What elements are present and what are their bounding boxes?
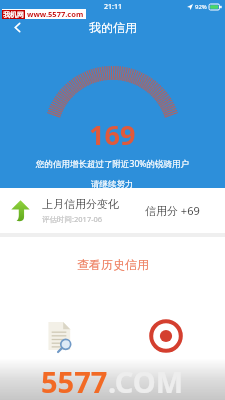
button[interactable]: Search document bbox=[38, 315, 80, 357]
button[interactable]: Back bbox=[4, 14, 30, 40]
staticText: 请继续努力 bbox=[91, 179, 134, 190]
staticText: 信用分 +69 bbox=[145, 203, 200, 218]
staticText: 21:11 bbox=[104, 2, 122, 12]
staticText: 您的信用增长超过了附近30%的锐骑用户 bbox=[36, 158, 189, 170]
staticText: www.5577.com bbox=[27, 9, 84, 19]
staticText: 169 bbox=[89, 116, 136, 153]
staticText: .COM bbox=[108, 362, 184, 400]
button[interactable]: Record bbox=[145, 315, 187, 357]
staticText: 5577 bbox=[41, 362, 108, 400]
button[interactable]: 上月信用分变化 bbox=[0, 188, 225, 233]
staticText: 查看历史信用 bbox=[77, 257, 149, 272]
staticText: 我机网 bbox=[3, 10, 24, 19]
staticText: 92% bbox=[195, 3, 207, 11]
staticText: 上月信用分变化 bbox=[42, 197, 119, 211]
staticText: 评估时间:2017-06 bbox=[42, 214, 103, 224]
button[interactable]: 查看历史信用 bbox=[0, 253, 225, 275]
staticText: 我的信用 bbox=[89, 20, 137, 35]
